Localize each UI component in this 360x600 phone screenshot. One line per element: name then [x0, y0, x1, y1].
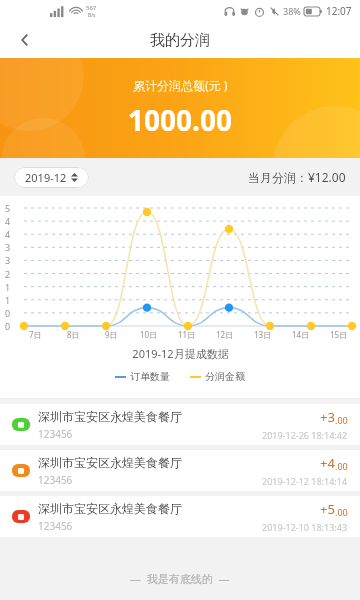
staticText: 11日 [178, 329, 196, 340]
staticText: 10日 [140, 329, 158, 340]
staticText: 14日 [292, 329, 310, 340]
staticText: 9日 [105, 329, 118, 340]
staticText: 1 [5, 294, 11, 306]
staticText: +5 [320, 500, 335, 518]
staticText: 8日 [67, 329, 80, 340]
staticText: 2019-12-10 18:13:43 [262, 521, 348, 533]
staticText: 累计分润总额(元 ) [133, 77, 228, 93]
staticText: 7日 [29, 329, 42, 340]
staticText: 123456 [38, 519, 73, 533]
staticText: 2 [5, 268, 11, 280]
staticText: 2019-12月提成数据 [132, 346, 229, 361]
staticText: 1000.00 [128, 101, 232, 139]
staticText: .00 [335, 414, 348, 426]
staticText: 订单数量 [130, 370, 170, 383]
staticText: 3 [5, 241, 11, 253]
staticText: 深圳市宝安区永煌美食餐厅 [38, 501, 182, 516]
button[interactable]: 2019-12 [14, 167, 89, 188]
staticText: 0 [5, 320, 11, 332]
button[interactable]: 深圳市宝安区永煌美食餐厅 [0, 404, 360, 445]
button[interactable]: 深圳市宝安区永煌美食餐厅 [0, 496, 360, 537]
staticText: 12日 [216, 329, 234, 340]
staticText: 123456 [38, 473, 73, 487]
button[interactable]: 深圳市宝安区永煌美食餐厅 [0, 450, 360, 491]
staticText: 4 [5, 228, 11, 240]
staticText: B/s [88, 12, 96, 19]
button[interactable]: Back [10, 25, 40, 55]
staticText: 3 [5, 254, 11, 266]
staticText: 13日 [254, 329, 272, 340]
staticText: 2019-12-26 18:14:42 [262, 429, 348, 441]
staticText: 15日 [330, 329, 348, 340]
staticText: 0 [5, 307, 11, 319]
staticText: 深圳市宝安区永煌美食餐厅 [38, 409, 182, 424]
staticText: 5 [5, 202, 11, 214]
staticText: 123456 [38, 427, 73, 441]
staticText: 12:07 [326, 4, 352, 18]
staticText: 当月分润：¥12.00 [248, 169, 346, 185]
staticText: 分润金额 [205, 370, 245, 383]
staticText: .00 [335, 460, 348, 472]
staticText: .00 [335, 506, 348, 518]
staticText: 2019-12 [25, 170, 67, 185]
staticText: +4 [320, 454, 335, 472]
staticText: 567 [86, 4, 97, 12]
staticText: — 我是有底线的 — [130, 571, 230, 586]
staticText: 我的分润 [150, 31, 210, 50]
staticText: 4 [5, 215, 11, 227]
staticText: 1 [5, 281, 11, 293]
staticText: 38% [283, 5, 301, 17]
staticText: 2019-12-12 18:14:14 [262, 475, 348, 487]
staticText: 深圳市宝安区永煌美食餐厅 [38, 455, 182, 470]
staticText: +3 [320, 408, 335, 426]
